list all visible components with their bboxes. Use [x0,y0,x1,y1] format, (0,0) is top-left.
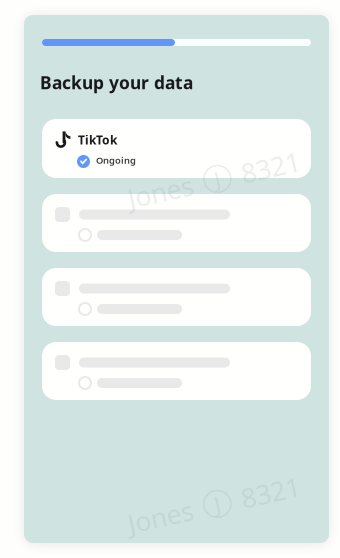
staticText: J [214,165,220,194]
button[interactable]: TikTok [42,119,311,178]
staticText: Jones [126,487,193,522]
button[interactable] [42,342,311,400]
staticText: Backup your data [40,71,193,94]
staticText: Jones [126,162,193,197]
staticText: J [214,490,220,519]
staticText: 8321 [242,487,302,522]
staticText: TikTok [78,132,117,148]
staticText: Ongoing [96,154,136,166]
button[interactable] [42,194,311,252]
staticText: 8321 [242,162,302,197]
button[interactable] [42,268,311,326]
